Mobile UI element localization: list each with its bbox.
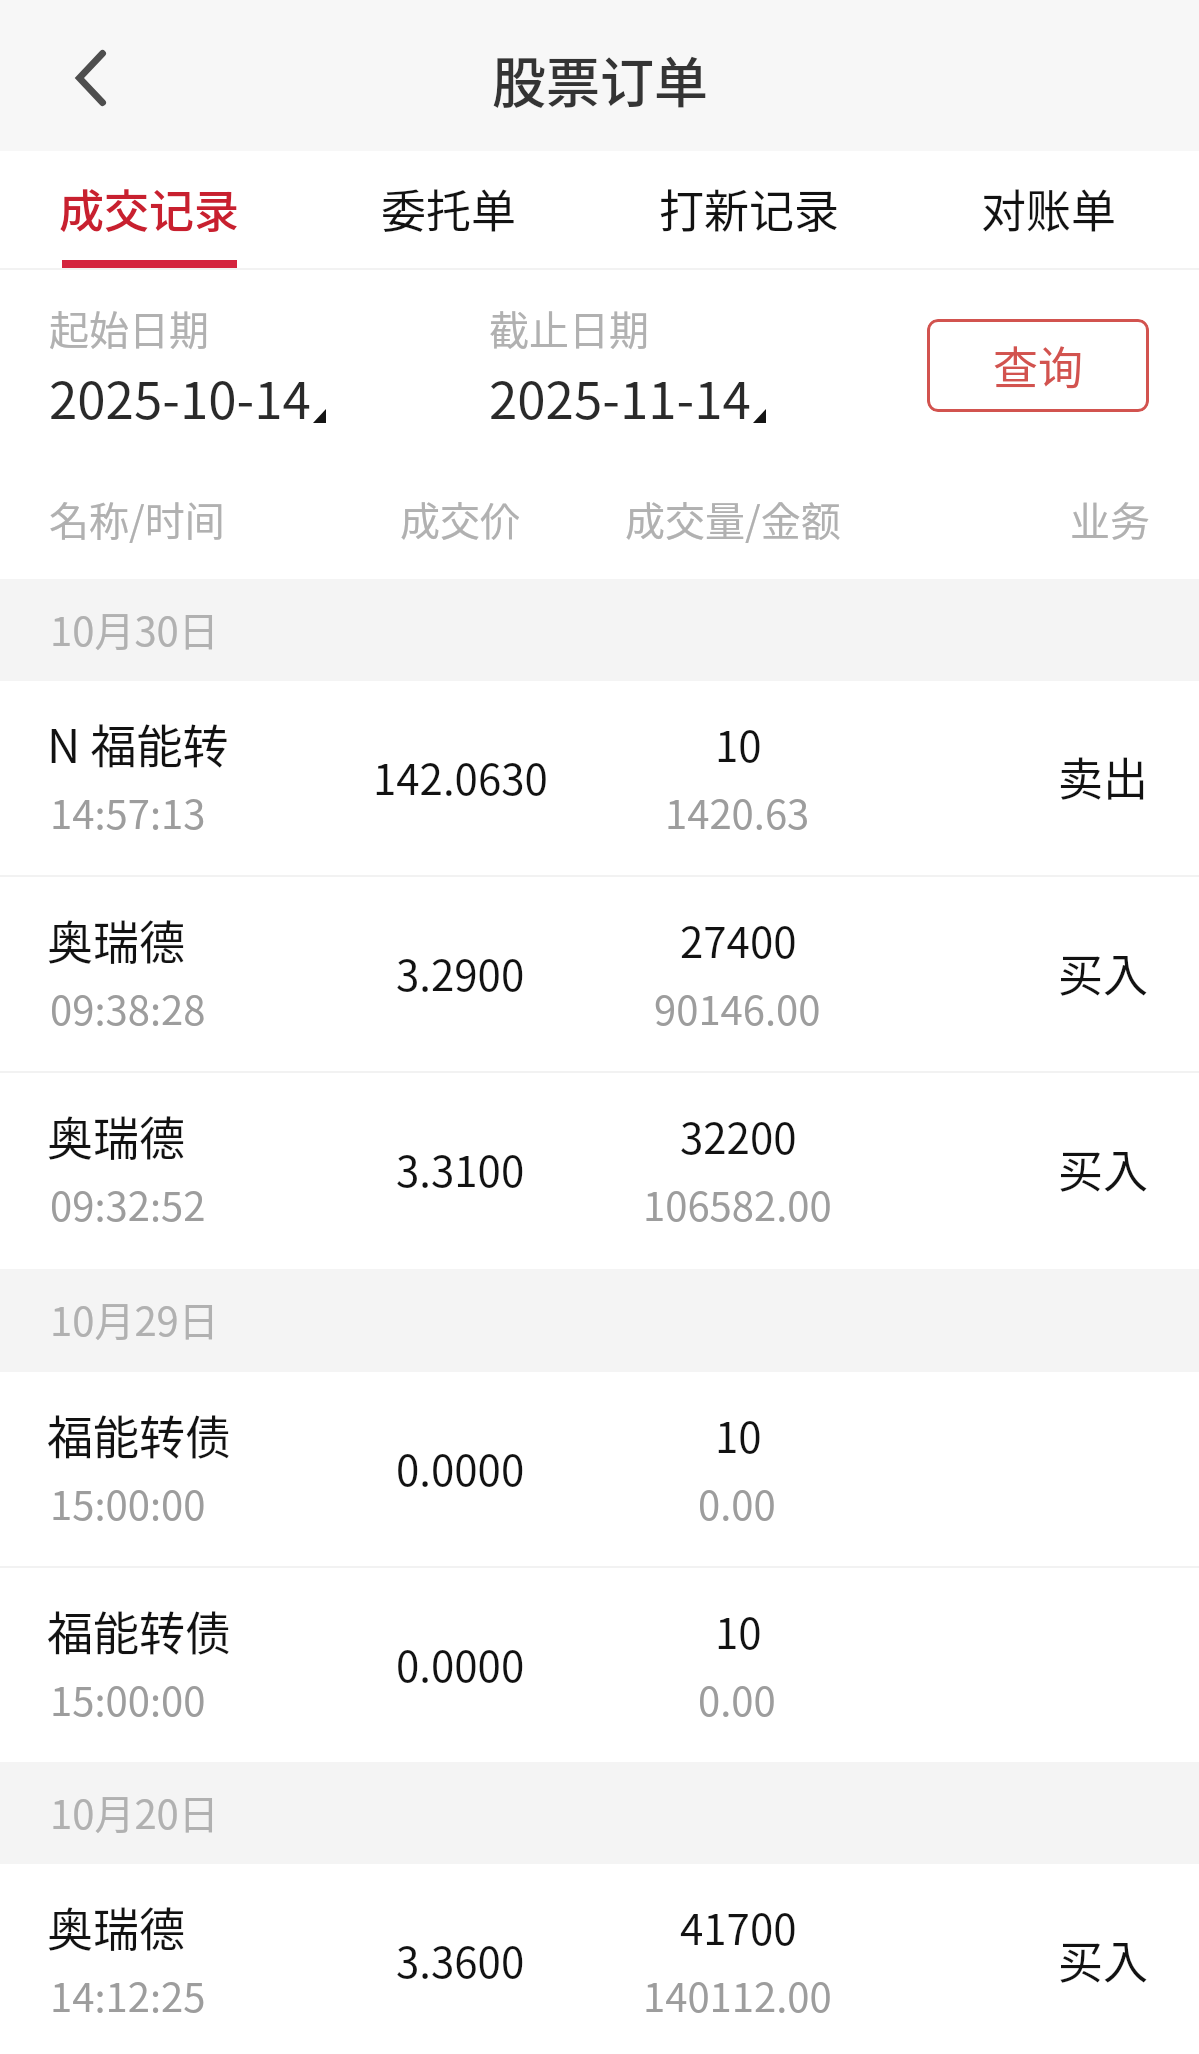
- staticText: 14:57:13: [50, 783, 206, 841]
- staticText: 10月30日: [50, 600, 219, 658]
- staticText: 3.3100: [396, 1138, 525, 1199]
- staticText: 福能转债: [47, 1401, 231, 1468]
- staticText: 2025-10-14: [49, 360, 311, 434]
- staticText: 106582.00: [643, 1175, 832, 1233]
- staticText: 0.0000: [396, 1437, 525, 1498]
- staticText: 0.00: [698, 1670, 776, 1728]
- staticText: 股票订单: [492, 40, 708, 118]
- button[interactable]: 对账单: [899, 151, 1199, 270]
- staticText: 2025-11-14: [489, 360, 751, 434]
- staticText: 41700: [680, 1896, 797, 1957]
- staticText: 142.0630: [373, 746, 548, 807]
- button[interactable]: 成交记录: [0, 151, 299, 270]
- staticText: 福能转债: [47, 1597, 231, 1664]
- button[interactable]: 奥瑞德: [0, 1073, 1199, 1269]
- button[interactable]: 打新记录: [599, 151, 899, 270]
- staticText: 卖出: [1058, 744, 1149, 809]
- staticText: 0.00: [698, 1474, 776, 1532]
- staticText: 90146.00: [654, 979, 821, 1037]
- staticText: 10月29日: [50, 1290, 219, 1348]
- staticText: 10月20日: [50, 1783, 219, 1841]
- staticText: 奥瑞德: [47, 1102, 185, 1169]
- staticText: 140112.00: [643, 1966, 832, 2024]
- button[interactable]: Back: [33, 20, 149, 136]
- staticText: 14:12:25: [50, 1966, 206, 2024]
- button[interactable]: 起始日期: [49, 290, 337, 435]
- button[interactable]: 福能转债: [0, 1568, 1199, 1762]
- staticText: 15:00:00: [50, 1474, 206, 1532]
- staticText: 买入: [1058, 1136, 1149, 1201]
- button[interactable]: 查询: [927, 319, 1149, 412]
- staticText: 名称/时间: [49, 490, 225, 548]
- staticText: 成交量/金额: [625, 490, 841, 548]
- staticText: 打新记录: [659, 176, 840, 241]
- staticText: N 福能转: [47, 710, 229, 777]
- staticText: 起始日期: [49, 299, 209, 357]
- staticText: 买入: [1058, 940, 1149, 1005]
- button[interactable]: N 福能转: [0, 681, 1199, 875]
- staticText: 奥瑞德: [47, 906, 185, 973]
- staticText: 27400: [680, 909, 797, 970]
- staticText: 奥瑞德: [47, 1893, 185, 1960]
- staticText: 09:32:52: [50, 1175, 206, 1233]
- staticText: 10: [715, 713, 762, 774]
- button[interactable]: 奥瑞德: [0, 1864, 1199, 2054]
- staticText: 32200: [680, 1105, 797, 1166]
- staticText: 买入: [1058, 1927, 1149, 1992]
- button[interactable]: 福能转债: [0, 1372, 1199, 1566]
- staticText: 09:38:28: [50, 979, 206, 1037]
- staticText: 15:00:00: [50, 1670, 206, 1728]
- button[interactable]: 委托单: [299, 151, 599, 270]
- staticText: 10: [715, 1404, 762, 1465]
- staticText: 3.2900: [396, 942, 525, 1003]
- staticText: 对账单: [981, 176, 1117, 241]
- staticText: 截止日期: [489, 299, 649, 357]
- staticText: 0.0000: [396, 1633, 525, 1694]
- staticText: 10: [715, 1600, 762, 1661]
- staticText: 委托单: [381, 176, 517, 241]
- staticText: 3.3600: [396, 1929, 525, 1990]
- staticText: 成交价: [400, 490, 520, 548]
- staticText: 业务: [1070, 490, 1150, 548]
- staticText: 查询: [993, 333, 1084, 398]
- staticText: 1420.63: [665, 783, 810, 841]
- button[interactable]: 截止日期: [489, 290, 777, 435]
- staticText: 成交记录: [59, 176, 240, 241]
- button[interactable]: 奥瑞德: [0, 877, 1199, 1071]
